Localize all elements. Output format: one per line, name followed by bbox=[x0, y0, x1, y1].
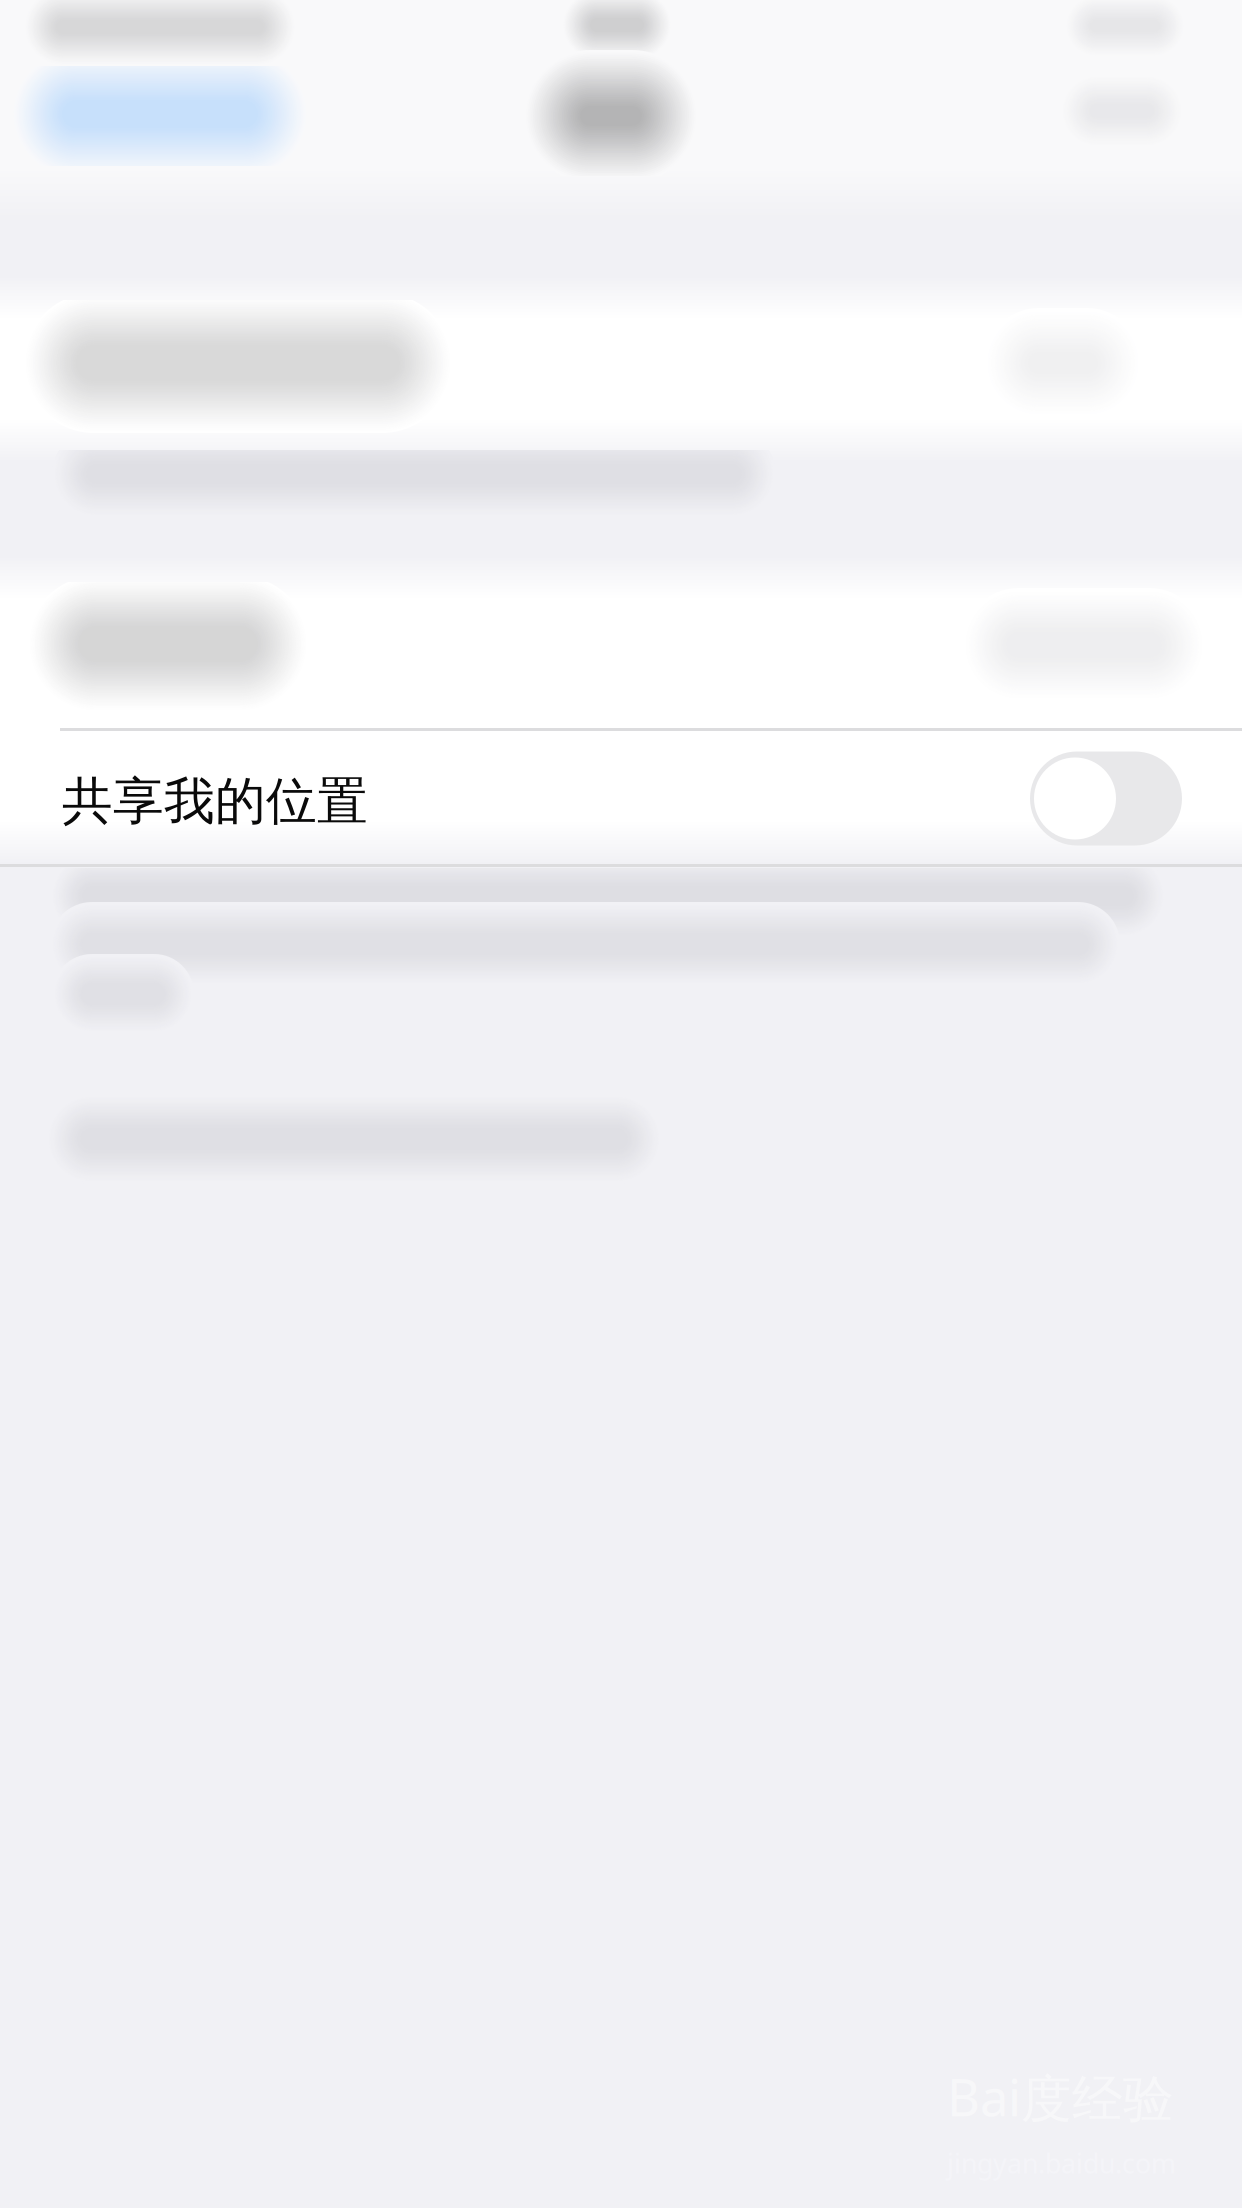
button[interactable]: 我的位置 bbox=[0, 0, 1242, 142]
button[interactable]: 共享我的位置 bbox=[0, 734, 1242, 869]
button[interactable]: 返回 bbox=[0, 0, 1242, 100]
staticText: 共享我的位置 bbox=[62, 770, 368, 833]
button[interactable]: 设置 bbox=[0, 0, 1242, 138]
